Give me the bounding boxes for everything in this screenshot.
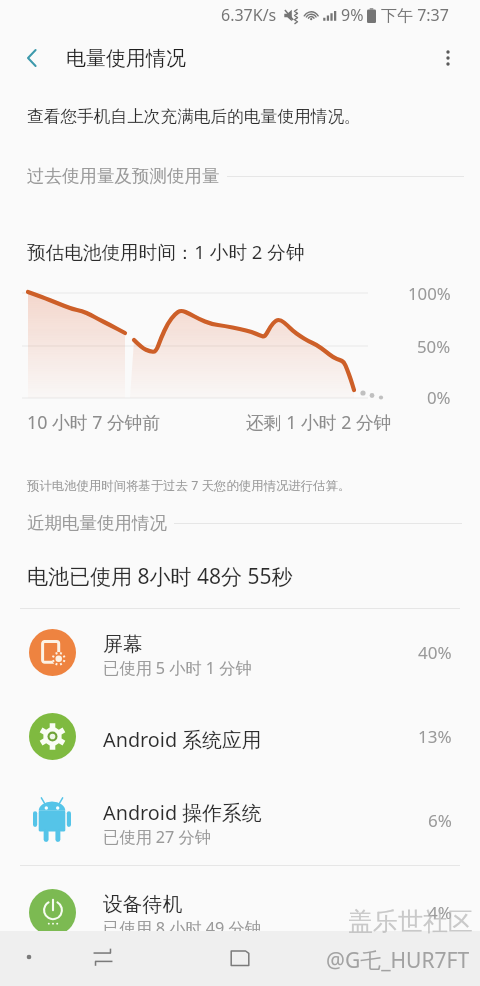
staticText: 过去使用量及预测使用量 bbox=[27, 165, 220, 187]
staticText: 40% bbox=[418, 641, 452, 664]
staticText: 下午 7:37 bbox=[381, 4, 449, 26]
staticText: 50% bbox=[417, 335, 451, 358]
staticText: 电量使用情况 bbox=[66, 46, 186, 71]
staticText: 还剩 1 小时 2 分钟 bbox=[246, 410, 392, 434]
button[interactable]: More options bbox=[426, 36, 470, 80]
staticText: Android 操作系统 bbox=[103, 799, 262, 826]
button[interactable]: Recents bbox=[218, 935, 262, 979]
button[interactable]: Android 系统应用 bbox=[0, 712, 480, 760]
staticText: 已使用 27 分钟 bbox=[103, 826, 211, 847]
staticText: 设备待机 bbox=[103, 892, 183, 917]
staticText: 10 小时 7 分钟前 bbox=[27, 410, 161, 434]
staticText: 0% bbox=[427, 386, 451, 409]
staticText: 6% bbox=[428, 809, 452, 832]
staticText: 4% bbox=[428, 901, 452, 924]
staticText: 100% bbox=[408, 282, 451, 305]
button[interactable]: Back bbox=[10, 36, 54, 80]
staticText: 查看您手机自上次充满电后的电量使用情况。 bbox=[27, 106, 361, 127]
staticText: @G乇_HUR7FT bbox=[326, 946, 470, 975]
button[interactable]: Menu bbox=[7, 935, 51, 979]
button[interactable]: Back bbox=[81, 935, 125, 979]
staticText: 电池已使用 8小时 48分 55秒 bbox=[27, 562, 293, 591]
staticText: 6.37K/s bbox=[221, 4, 277, 26]
staticText: 屏幕 bbox=[103, 632, 143, 657]
staticText: 近期电量使用情况 bbox=[27, 512, 167, 534]
staticText: Android 系统应用 bbox=[103, 726, 262, 753]
staticText: 13% bbox=[418, 725, 452, 748]
button[interactable]: Android 操作系统 bbox=[0, 796, 480, 844]
button[interactable]: 设备待机 bbox=[0, 888, 480, 936]
staticText: 预计电池使用时间将基于过去 7 天您的使用情况进行估算。 bbox=[27, 477, 351, 494]
staticText: 预估电池使用时间：1 小时 2 分钟 bbox=[27, 239, 305, 264]
staticText: 9% bbox=[341, 4, 364, 26]
button[interactable]: 屏幕 bbox=[0, 628, 480, 676]
staticText: 盖乐世社区 bbox=[348, 906, 473, 937]
staticText: 已使用 5 小时 1 分钟 bbox=[103, 657, 252, 679]
staticText: 已使用 8 小时 49 分钟 bbox=[103, 917, 261, 939]
